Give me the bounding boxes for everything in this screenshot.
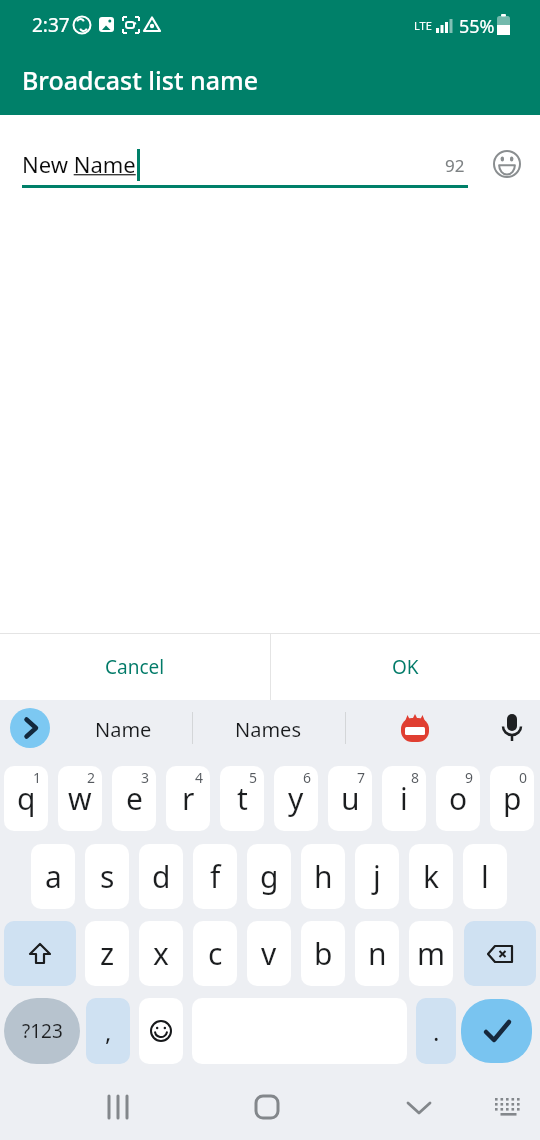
button[interactable]: p	[490, 766, 534, 831]
button[interactable]: k	[409, 844, 453, 909]
button[interactable]: g	[247, 844, 291, 909]
staticText: p	[503, 778, 522, 819]
staticText: d	[152, 856, 171, 897]
button[interactable]: z	[85, 921, 129, 986]
button[interactable]	[464, 921, 536, 986]
button[interactable]: ,	[86, 998, 130, 1064]
staticText: n	[368, 933, 387, 974]
staticText: LTE	[414, 18, 432, 33]
button[interactable]	[139, 998, 183, 1064]
staticText: 2:37	[32, 12, 70, 38]
staticText: k	[423, 856, 440, 897]
button[interactable]	[490, 147, 524, 181]
staticText: 0	[519, 768, 528, 787]
staticText: j	[373, 856, 381, 897]
staticText: 92	[445, 154, 465, 177]
button[interactable]: j	[355, 844, 399, 909]
staticText: r	[182, 778, 195, 819]
staticText: q	[17, 778, 36, 819]
staticText: ?123	[22, 1018, 63, 1044]
staticText: l	[481, 856, 489, 897]
button[interactable]: i	[382, 766, 426, 831]
button[interactable]: c	[193, 921, 237, 986]
staticText: .	[433, 1015, 440, 1048]
staticText: a	[45, 856, 62, 897]
staticText: y	[288, 778, 304, 819]
staticText: u	[341, 778, 360, 819]
button[interactable]: x	[139, 921, 183, 986]
staticText: o	[449, 778, 468, 819]
staticText: g	[260, 856, 279, 897]
button[interactable]: ?123	[4, 998, 80, 1064]
button[interactable]: l	[463, 844, 507, 909]
staticText: 3	[141, 768, 150, 787]
staticText: 6	[303, 768, 312, 787]
staticText: s	[100, 856, 115, 897]
button[interactable]: e	[112, 766, 156, 831]
staticText: h	[314, 856, 333, 897]
button[interactable]	[10, 708, 50, 748]
staticText: Cancel	[105, 654, 165, 680]
button[interactable]: Names	[198, 707, 338, 751]
staticText: 8	[411, 768, 420, 787]
staticText: Names	[235, 716, 301, 743]
staticText: 55%	[459, 14, 495, 39]
staticText: 4	[195, 768, 204, 787]
button[interactable]	[490, 1090, 526, 1126]
staticText: x	[153, 933, 169, 974]
staticText: 5	[249, 768, 258, 787]
staticText: i	[400, 778, 408, 819]
button[interactable]: n	[355, 921, 399, 986]
button[interactable]: v	[247, 921, 291, 986]
staticText: f	[210, 856, 221, 897]
button[interactable]	[247, 1087, 287, 1127]
staticText: z	[100, 933, 115, 974]
button[interactable]: f	[193, 844, 237, 909]
button[interactable]	[98, 1087, 138, 1127]
staticText: c	[208, 933, 223, 974]
button[interactable]	[492, 708, 532, 748]
staticText: Broadcast list name	[22, 63, 259, 97]
staticText: New Name	[22, 149, 136, 179]
button[interactable]: b	[301, 921, 345, 986]
staticText: 2	[87, 768, 96, 787]
button[interactable]: Name	[60, 707, 186, 751]
button[interactable]: a	[31, 844, 75, 909]
staticText: w	[68, 778, 92, 819]
button[interactable]	[399, 1087, 439, 1127]
button[interactable]: y	[274, 766, 318, 831]
button[interactable]	[4, 921, 76, 986]
button[interactable]: o	[436, 766, 480, 831]
button[interactable]: d	[139, 844, 183, 909]
button[interactable]: r	[166, 766, 210, 831]
staticText: b	[314, 933, 333, 974]
staticText: t	[237, 778, 248, 819]
button[interactable]: s	[85, 844, 129, 909]
button[interactable]: q	[4, 766, 48, 831]
button[interactable]: h	[301, 844, 345, 909]
staticText: v	[261, 933, 277, 974]
button[interactable]: u	[328, 766, 372, 831]
button[interactable]: w	[58, 766, 102, 831]
button[interactable]: Cancel	[0, 634, 270, 700]
staticText: ,	[105, 1015, 112, 1048]
button[interactable]	[395, 708, 435, 748]
staticText: e	[126, 778, 143, 819]
button[interactable]: OK	[270, 634, 540, 700]
staticText: m	[417, 933, 446, 974]
button[interactable]: .	[416, 998, 456, 1064]
button[interactable]	[461, 999, 532, 1063]
staticText: Name	[95, 716, 152, 743]
button[interactable]: m	[409, 921, 453, 986]
button[interactable]: t	[220, 766, 264, 831]
staticText: OK	[392, 654, 419, 680]
staticText: 9	[465, 768, 474, 787]
staticText: 1	[33, 768, 42, 787]
staticText: 7	[357, 768, 366, 787]
